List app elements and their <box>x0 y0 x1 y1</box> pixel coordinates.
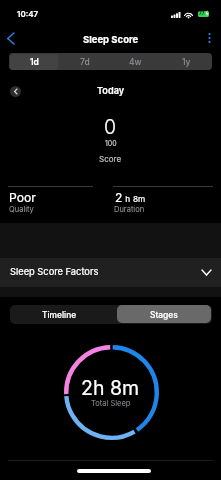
staticText: 0 <box>104 115 117 139</box>
staticText: Duration <box>114 205 145 214</box>
button[interactable]: Back <box>2 28 19 48</box>
staticText: 7d <box>80 57 90 67</box>
button[interactable]: Stages <box>111 305 212 324</box>
staticText: 100 <box>105 139 117 147</box>
button[interactable]: 4w <box>110 53 161 70</box>
staticText: Score <box>99 154 122 164</box>
button[interactable]: Sleep Score Factors <box>0 258 221 287</box>
staticText: 2h 8m <box>81 376 140 400</box>
staticText: 2 <box>115 190 123 205</box>
staticText: Stages <box>150 310 178 320</box>
button[interactable]: 1y <box>161 53 212 70</box>
staticText: Sleep Score <box>83 34 139 45</box>
staticText: Poor <box>9 190 36 205</box>
staticText: 8m <box>133 194 146 204</box>
staticText: Quality <box>9 205 34 214</box>
button[interactable]: Timeline <box>10 305 111 324</box>
staticText: 10:47 <box>17 9 39 19</box>
button[interactable]: Previous day <box>5 81 25 101</box>
staticText: Timeline <box>42 310 77 320</box>
button[interactable]: 1d <box>9 53 59 70</box>
staticText: 4w <box>129 57 142 67</box>
staticText: Sleep Score Factors <box>10 266 99 277</box>
staticText: 1y <box>182 57 191 67</box>
button[interactable]: 7d <box>59 53 110 70</box>
staticText: Total Sleep <box>91 399 131 408</box>
staticText: 77 <box>199 11 205 17</box>
staticText: h <box>123 194 133 204</box>
staticText: Today <box>97 85 125 96</box>
button[interactable]: More options <box>200 28 218 48</box>
staticText: 1d <box>30 57 39 67</box>
